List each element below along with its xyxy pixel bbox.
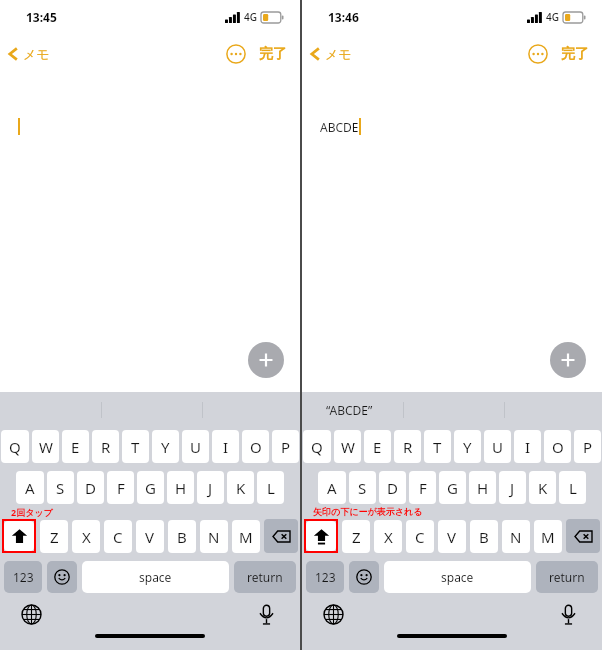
button[interactable]: H <box>167 471 194 504</box>
button[interactable]: I <box>212 430 239 463</box>
button[interactable]: A <box>318 471 346 504</box>
button[interactable]: 完了 <box>259 45 287 63</box>
button[interactable]: Shift <box>306 521 336 551</box>
staticText: Z <box>50 527 59 547</box>
button[interactable]: return <box>536 561 598 593</box>
button[interactable]: E <box>62 430 89 463</box>
staticText: 13:46 <box>328 9 359 25</box>
button[interactable]: Z <box>40 520 68 553</box>
button[interactable]: K <box>529 471 556 504</box>
button[interactable]: G <box>439 471 466 504</box>
button[interactable]: 123 <box>306 561 344 593</box>
button[interactable]: return <box>234 561 296 593</box>
staticText: 4G <box>546 10 559 24</box>
button[interactable]: More options <box>226 44 246 64</box>
button[interactable]: Add attachment <box>248 342 284 378</box>
staticText: N <box>208 527 220 547</box>
button[interactable]: Dictation <box>256 604 277 625</box>
button[interactable]: I <box>514 430 541 463</box>
button[interactable]: 123 <box>4 561 42 593</box>
button[interactable]: J <box>499 471 526 504</box>
button[interactable]: V <box>438 520 466 553</box>
button[interactable]: D <box>77 471 104 504</box>
staticText: A <box>327 478 337 498</box>
staticText: T <box>131 437 140 457</box>
staticText: J <box>510 478 515 498</box>
staticText: 完了 <box>259 45 287 63</box>
staticText: E <box>373 437 382 457</box>
button[interactable]: B <box>168 520 196 553</box>
button[interactable]: More options <box>528 44 548 64</box>
button[interactable]: M <box>232 520 260 553</box>
button[interactable]: H <box>469 471 496 504</box>
button[interactable]: Z <box>342 520 370 553</box>
button[interactable]: M <box>534 520 562 553</box>
staticText: 123 <box>13 569 34 585</box>
button[interactable]: G <box>137 471 164 504</box>
button[interactable]: W <box>32 430 59 463</box>
staticText: L <box>569 478 577 498</box>
staticText: Y <box>161 437 170 457</box>
button[interactable]: C <box>406 520 434 553</box>
button[interactable]: 完了 <box>561 45 589 63</box>
button[interactable]: P <box>574 430 601 463</box>
button[interactable]: T <box>424 430 451 463</box>
button[interactable]: Q <box>303 430 331 463</box>
button[interactable]: S <box>349 471 376 504</box>
button[interactable]: L <box>559 471 586 504</box>
button[interactable]: N <box>502 520 530 553</box>
button[interactable]: Dictation <box>558 604 579 625</box>
button[interactable]: F <box>409 471 436 504</box>
button[interactable]: space <box>82 561 229 593</box>
button[interactable]: V <box>136 520 164 553</box>
button[interactable]: L <box>257 471 284 504</box>
button[interactable]: R <box>92 430 119 463</box>
button[interactable]: Y <box>152 430 179 463</box>
button[interactable]: Q <box>1 430 29 463</box>
button[interactable]: F <box>107 471 134 504</box>
button[interactable]: Add attachment <box>550 342 586 378</box>
staticText: X <box>82 527 91 547</box>
button[interactable]: “ABCDE” <box>326 402 373 418</box>
button[interactable]: K <box>227 471 254 504</box>
button[interactable]: U <box>484 430 511 463</box>
button[interactable]: メモ <box>5 44 50 64</box>
staticText: R <box>101 437 111 457</box>
button[interactable]: W <box>334 430 361 463</box>
staticText: C <box>113 527 123 547</box>
button[interactable]: C <box>104 520 132 553</box>
button[interactable]: P <box>272 430 299 463</box>
button[interactable]: Delete <box>566 519 600 553</box>
staticText: L <box>267 478 275 498</box>
button[interactable]: Change keyboard <box>21 604 42 625</box>
button[interactable]: O <box>242 430 269 463</box>
button[interactable]: O <box>544 430 571 463</box>
button[interactable]: N <box>200 520 228 553</box>
button[interactable]: X <box>72 520 100 553</box>
staticText: V <box>447 527 457 547</box>
button[interactable]: U <box>182 430 209 463</box>
button[interactable]: B <box>470 520 498 553</box>
button[interactable]: Delete <box>264 519 298 553</box>
button[interactable]: Emoji <box>349 561 379 593</box>
button[interactable]: Y <box>454 430 481 463</box>
staticText: K <box>538 478 548 498</box>
button[interactable]: Shift <box>4 521 34 551</box>
button[interactable]: space <box>384 561 531 593</box>
staticText: return <box>247 569 283 585</box>
button[interactable]: J <box>197 471 224 504</box>
staticText: H <box>477 478 489 498</box>
button[interactable]: Change keyboard <box>323 604 344 625</box>
button[interactable]: X <box>374 520 402 553</box>
staticText: G <box>145 478 156 498</box>
button[interactable]: T <box>122 430 149 463</box>
button[interactable]: D <box>379 471 406 504</box>
button[interactable]: A <box>16 471 44 504</box>
button[interactable]: R <box>394 430 421 463</box>
staticText: W <box>341 437 355 457</box>
button[interactable]: S <box>47 471 74 504</box>
button[interactable]: メモ <box>307 44 352 64</box>
button[interactable]: E <box>364 430 391 463</box>
button[interactable]: Emoji <box>47 561 77 593</box>
staticText: F <box>117 478 125 498</box>
